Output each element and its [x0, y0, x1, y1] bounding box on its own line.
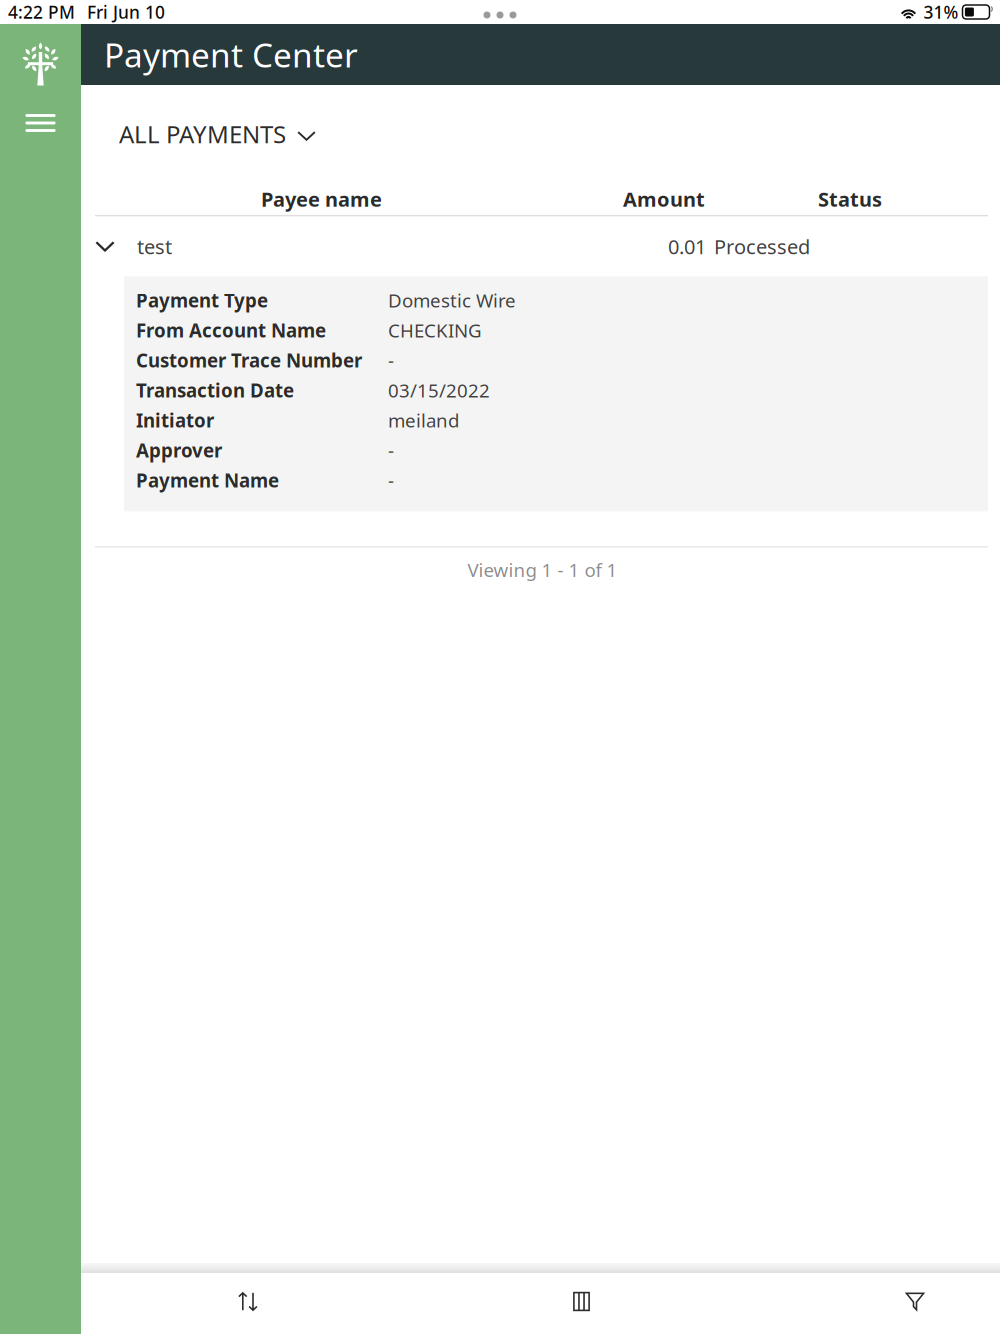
- staticText: ALL PAYMENTS: [119, 118, 286, 150]
- button[interactable]: ALL PAYMENTS: [117, 109, 318, 159]
- staticText: Initiator: [136, 408, 214, 433]
- staticText: Payee name: [261, 186, 382, 212]
- button[interactable]: Home: [0, 24, 81, 88]
- staticText: test: [137, 233, 172, 260]
- button[interactable]: Columns: [511, 1277, 651, 1329]
- staticText: Payment Type: [136, 288, 268, 313]
- staticText: Domestic Wire: [388, 288, 516, 313]
- staticText: -: [388, 468, 394, 493]
- staticText: Viewing 1 - 1 of 1: [467, 557, 617, 582]
- staticText: 31%: [923, 0, 958, 23]
- staticText: Payment Center: [104, 32, 358, 77]
- staticText: meiland: [388, 408, 459, 433]
- staticText: -: [388, 348, 394, 373]
- staticText: 0.01: [668, 233, 706, 260]
- staticText: From Account Name: [136, 318, 326, 343]
- button[interactable]: Sort: [178, 1277, 318, 1329]
- staticText: CHECKING: [388, 318, 482, 343]
- staticText: 03/15/2022: [388, 378, 490, 403]
- staticText: Processed: [714, 233, 810, 260]
- button[interactable]: test: [81, 216, 1000, 276]
- button[interactable]: Filter: [845, 1277, 985, 1329]
- staticText: Amount: [623, 186, 705, 212]
- staticText: -: [388, 438, 394, 463]
- button[interactable]: Menu: [0, 88, 81, 140]
- staticText: Customer Trace Number: [136, 348, 362, 373]
- staticText: Status: [818, 186, 882, 212]
- staticText: Fri Jun 10: [87, 0, 165, 23]
- staticText: 4:22 PM: [8, 0, 75, 23]
- staticText: Payment Name: [136, 468, 279, 493]
- staticText: Approver: [136, 438, 222, 463]
- staticText: Transaction Date: [136, 378, 294, 403]
